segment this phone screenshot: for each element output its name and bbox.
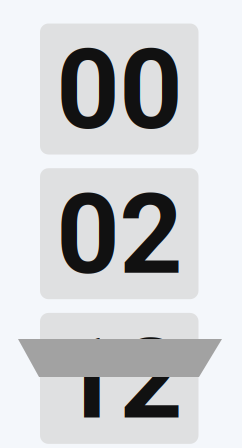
staticText: 02 [56,170,182,300]
button[interactable]: 02 [40,168,198,299]
staticText: 00 [56,25,182,155]
button[interactable]: 00 [40,23,198,154]
staticText: 12 [56,315,182,444]
button[interactable]: 12 [40,313,198,444]
